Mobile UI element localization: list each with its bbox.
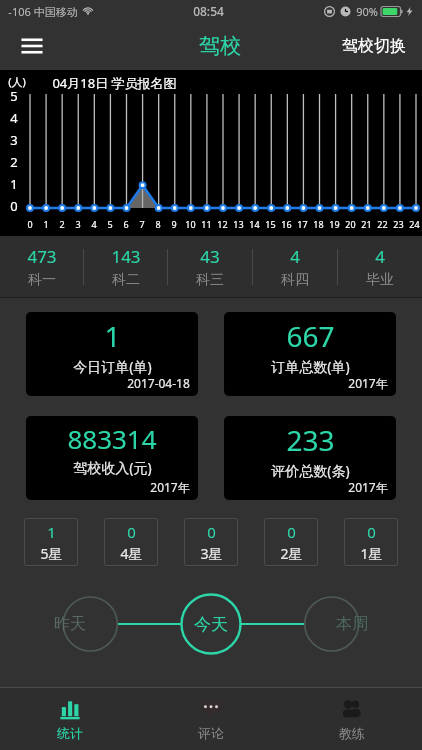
button[interactable]: 233 — [224, 416, 396, 500]
staticText: 667 — [286, 317, 335, 355]
button[interactable]: 统计 — [0, 688, 140, 750]
staticText: 5 — [107, 218, 113, 230]
staticText: 2017-04-18 — [127, 375, 190, 391]
staticText: 驾校切换 — [342, 36, 406, 56]
button[interactable]: 0 — [264, 518, 318, 566]
button[interactable]: 143 — [84, 236, 167, 298]
staticText: 4 — [375, 245, 385, 268]
staticText: 科四 — [281, 271, 309, 289]
staticText: 0 — [127, 522, 136, 542]
staticText: 1星 — [360, 544, 383, 563]
button[interactable]: 0 — [344, 518, 398, 566]
staticText: 4 — [290, 245, 300, 268]
button[interactable]: 1 — [26, 312, 198, 396]
button[interactable]: 473 — [0, 236, 83, 298]
staticText: 2星 — [280, 544, 303, 563]
staticText: 科一 — [28, 271, 56, 289]
staticText: 统计 — [57, 725, 83, 741]
staticText: 2017年 — [150, 479, 190, 495]
staticText: 2017年 — [348, 375, 388, 391]
staticText: 04月18日 学员报名图 — [52, 74, 177, 92]
button[interactable]: Menu — [10, 24, 54, 68]
staticText: 今天 — [194, 614, 228, 635]
staticText: 15 — [265, 218, 276, 230]
button[interactable]: 883314 — [26, 416, 198, 500]
staticText: 473 — [27, 245, 57, 268]
staticText: 08:54 — [193, 3, 224, 19]
staticText: 科二 — [112, 271, 140, 289]
staticText: 21 — [361, 218, 372, 230]
button[interactable]: 4 — [253, 236, 337, 298]
staticText: 24 — [409, 218, 420, 230]
staticText: 3星 — [200, 544, 223, 563]
staticText: 14 — [249, 218, 260, 230]
staticText: 6 — [123, 218, 129, 230]
staticText: 0 — [10, 197, 18, 215]
staticText: 1 — [10, 175, 18, 193]
staticText: 11 — [201, 218, 212, 230]
button[interactable]: 0 — [104, 518, 158, 566]
staticText: 驾校收入(元) — [73, 458, 152, 477]
staticText: 4星 — [120, 544, 143, 563]
button[interactable]: 教练 — [281, 688, 422, 750]
staticText: 12 — [217, 218, 228, 230]
staticText: 4 — [91, 218, 97, 230]
staticText: 5 — [10, 87, 18, 105]
staticText: (人) — [8, 74, 26, 89]
staticText: 9 — [171, 218, 177, 230]
staticText: 8 — [155, 218, 161, 230]
staticText: 教练 — [339, 725, 365, 741]
button[interactable]: 驾校切换 — [326, 26, 422, 66]
staticText: 13 — [233, 218, 244, 230]
button[interactable]: 43 — [168, 236, 252, 298]
staticText: 23 — [393, 218, 404, 230]
staticText: 2 — [59, 218, 65, 230]
staticText: 0 — [207, 522, 216, 542]
staticText: 22 — [377, 218, 388, 230]
staticText: 0 — [287, 522, 296, 542]
button[interactable]: 今天 — [180, 593, 242, 655]
staticText: 43 — [200, 245, 220, 268]
staticText: 科三 — [196, 271, 224, 289]
button[interactable]: 1 — [24, 518, 78, 566]
staticText: 0 — [27, 218, 33, 230]
staticText: 昨天 — [54, 614, 86, 634]
staticText: 评论 — [198, 725, 224, 741]
staticText: 143 — [111, 245, 141, 268]
staticText: 毕业 — [366, 271, 394, 289]
staticText: 883314 — [67, 421, 157, 456]
staticText: 订单总数(单) — [271, 357, 350, 376]
button[interactable]: 4 — [338, 236, 422, 298]
button[interactable]: 昨天 — [41, 595, 99, 653]
staticText: 1 — [47, 522, 56, 542]
staticText: 5星 — [40, 544, 63, 563]
staticText: 20 — [345, 218, 356, 230]
staticText: 7 — [139, 218, 145, 230]
staticText: 3 — [75, 218, 81, 230]
staticText: 18 — [313, 218, 324, 230]
staticText: 16 — [281, 218, 292, 230]
staticText: 驾校 — [199, 33, 241, 59]
staticText: 评价总数(条) — [271, 461, 350, 480]
button[interactable]: 本周 — [323, 595, 381, 653]
staticText: -106 中国移动 — [8, 4, 78, 19]
button[interactable]: 评论 — [140, 688, 281, 750]
staticText: 0 — [367, 522, 376, 542]
staticText: 今日订单(单) — [73, 357, 152, 376]
staticText: 19 — [329, 218, 340, 230]
button[interactable]: 667 — [224, 312, 396, 396]
staticText: 1 — [104, 317, 121, 355]
staticText: 233 — [286, 421, 335, 459]
staticText: 2017年 — [348, 479, 388, 495]
staticText: 10 — [185, 218, 196, 230]
staticText: 1 — [43, 218, 49, 230]
staticText: 90% — [356, 4, 378, 19]
staticText: 2 — [10, 153, 18, 171]
staticText: 4 — [10, 109, 18, 127]
staticText: 本周 — [336, 614, 368, 634]
button[interactable]: 0 — [184, 518, 238, 566]
staticText: 3 — [10, 131, 18, 149]
staticText: 17 — [297, 218, 308, 230]
